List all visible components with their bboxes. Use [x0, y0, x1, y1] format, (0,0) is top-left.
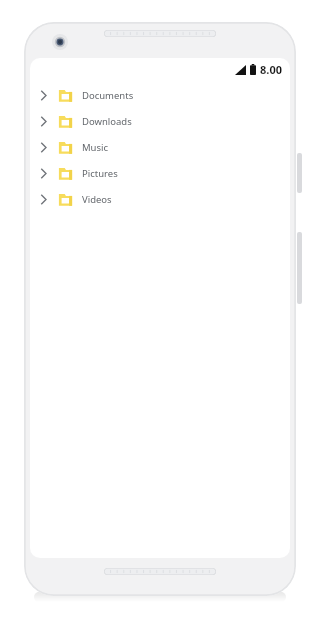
staticText: Videos: [82, 193, 112, 206]
other: Expand Music: [35, 137, 51, 157]
other: Expand Documents: [35, 85, 51, 105]
staticText: Music: [82, 141, 109, 154]
staticText: Pictures: [82, 167, 118, 180]
other: Expand Pictures: [35, 163, 51, 183]
staticText: Documents: [82, 89, 134, 102]
other: Expand Downloads: [35, 111, 51, 131]
button[interactable]: Expand Music: [30, 134, 290, 160]
button[interactable]: Expand Pictures: [30, 160, 290, 186]
button[interactable]: Expand Documents: [30, 82, 290, 108]
other: Expand Videos: [35, 189, 51, 209]
button[interactable]: Expand Videos: [30, 186, 290, 212]
button[interactable]: Expand Downloads: [30, 108, 290, 134]
staticText: 8.00: [260, 62, 282, 77]
staticText: Downloads: [82, 115, 132, 128]
